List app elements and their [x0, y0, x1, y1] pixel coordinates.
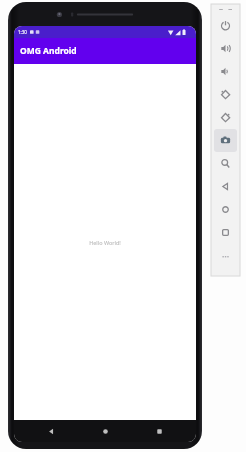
button[interactable]: Back — [214, 175, 237, 198]
button[interactable]: Home — [214, 198, 237, 221]
button[interactable]: Volume down — [214, 60, 237, 83]
button[interactable]: Recent apps — [142, 420, 176, 442]
button[interactable]: Home — [88, 420, 122, 442]
button[interactable]: Volume up — [214, 37, 237, 60]
button[interactable]: OMG Android — [14, 38, 196, 64]
staticText: Hello World! — [89, 239, 121, 246]
button[interactable]: More — [214, 244, 237, 267]
button[interactable]: Overview — [214, 221, 237, 244]
button[interactable]: Back — [34, 420, 68, 442]
button[interactable]: Rotate right — [214, 106, 237, 129]
button[interactable]: Take screenshot — [214, 129, 237, 152]
button[interactable]: Zoom — [214, 152, 237, 175]
staticText: 1:30 — [18, 29, 27, 35]
button[interactable]: Power — [214, 14, 237, 37]
button[interactable]: Rotate left — [214, 83, 237, 106]
staticText: OMG Android — [20, 45, 77, 57]
